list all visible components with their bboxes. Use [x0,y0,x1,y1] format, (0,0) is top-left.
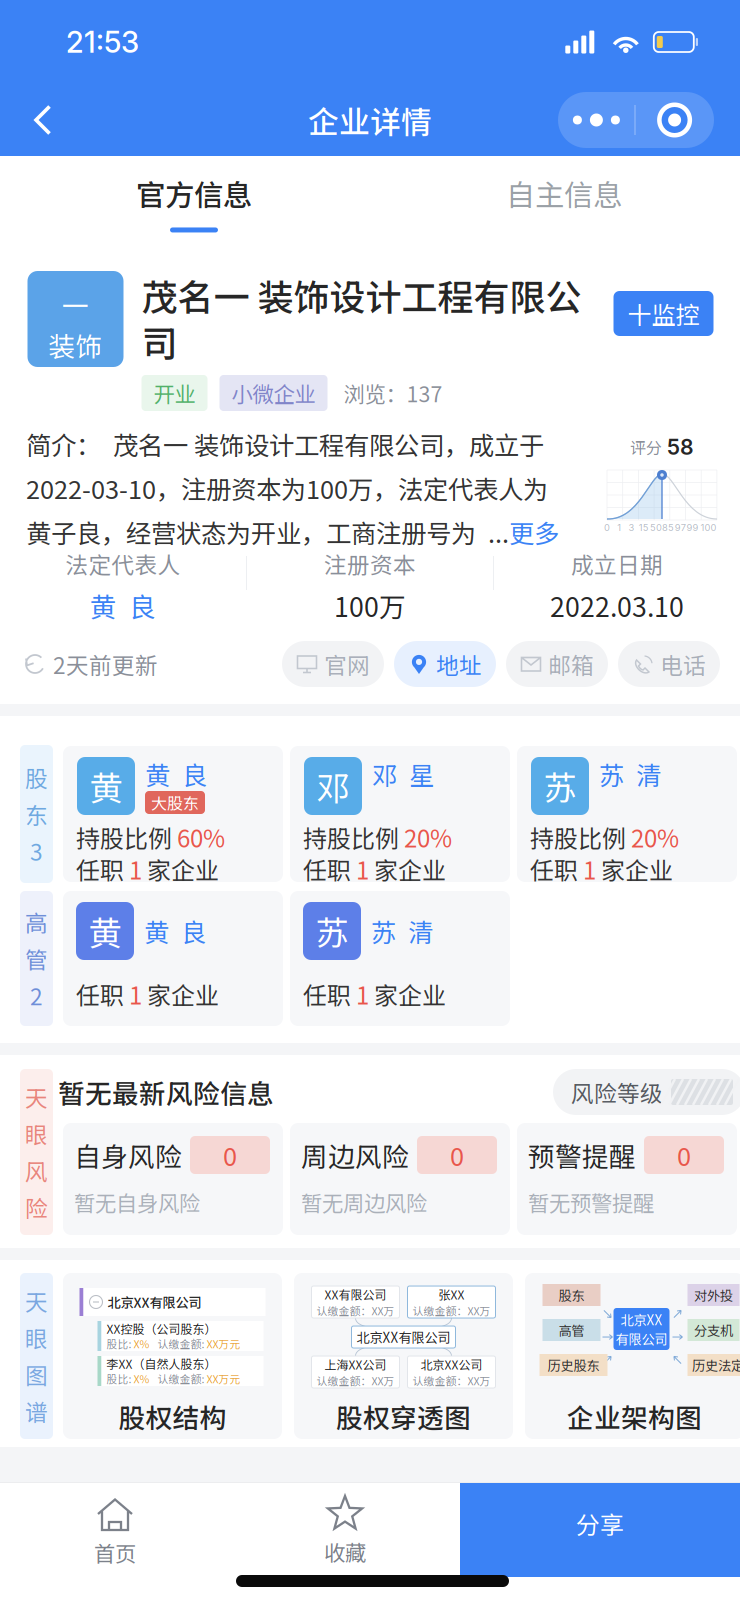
staticText: 股权穿透图 [336,1397,471,1436]
button[interactable]: Back [14,88,72,152]
staticText: 3 [30,834,43,867]
staticText: 北京XX有限公司 [107,1292,201,1312]
staticText: 开业 [153,378,195,408]
staticText: 分享 [576,1506,624,1541]
staticText: 任职 [303,852,356,886]
button[interactable]: Close mini program [636,92,714,148]
button[interactable]: 邮箱 [506,641,608,687]
button[interactable]: XX有限公司 [294,1273,513,1439]
staticText: 注册资本 [324,547,416,580]
staticText: 1 [617,522,621,533]
staticText: 股比: [106,1371,133,1386]
button[interactable]: 收藏 [230,1483,460,1577]
staticText: 家企业 [596,852,673,886]
staticText: 险 [25,1191,48,1224]
staticText: 有限公司 [615,1329,667,1348]
staticText: 15 [639,522,649,533]
staticText: XX控股（公司股东） [106,1320,216,1337]
staticText: 地址 [436,648,482,680]
staticText: 自主信息 [506,172,622,214]
staticText: 认缴金额: [157,1336,206,1351]
staticText: 股权结构 [118,1397,226,1436]
staticText: 浏览：137 [343,378,442,408]
staticText: 任职 [76,977,129,1011]
button[interactable]: 黄 [63,891,283,1026]
button[interactable]: 分享 [460,1483,740,1577]
button[interactable]: 苏 [290,891,510,1026]
staticText: 风险等级 [571,1076,663,1108]
staticText: 100 [701,522,717,533]
staticText: 50 [650,522,662,533]
staticText: 股比: [106,1336,133,1351]
button[interactable]: 自身风险 [63,1123,283,1235]
staticText: 认缴金额：XX万 [316,1373,394,1388]
button[interactable]: 邓 [290,746,510,882]
staticText: 分支机 [694,1320,733,1340]
staticText: 苏 清 [371,913,433,949]
staticText: 苏 清 [599,756,661,792]
staticText: 1 [129,977,142,1011]
staticText: 认缴金额：XX万 [316,1303,394,1318]
staticText: 苏 [315,907,348,955]
staticText: 1 [356,852,369,886]
staticText: 黄 [89,762,122,810]
staticText: 3 [628,522,634,533]
staticText: 北京XX公司 [420,1356,482,1373]
staticText: 眼 [25,1321,48,1354]
button[interactable]: 十监控 [613,291,713,336]
staticText: 0 [677,1137,691,1173]
staticText: 2022-03-10，注册资本为100万，法定代表人为 [26,470,548,506]
button[interactable]: 预警提醒 [517,1123,737,1235]
staticText: 成立日期 [571,547,663,580]
staticText: 一 [62,285,89,324]
staticText: 简介： 茂名一 装饰设计工程有限公司，成立于 [26,426,544,462]
staticText: 周边风险 [301,1136,409,1174]
button[interactable]: 北京XX有限公司 [63,1273,282,1439]
staticText: 图 [25,1358,48,1391]
staticText: 1 [129,852,142,886]
staticText: 股 [25,761,48,794]
staticText: 暂无最新风险信息 [58,1073,274,1111]
button[interactable]: More options [558,92,634,148]
staticText: 家企业 [369,977,446,1011]
button[interactable]: 地址 [394,641,496,687]
staticText: 0 [604,522,610,533]
staticText: 0 [450,1137,464,1173]
staticText: 暂无自身风险 [74,1187,200,1217]
staticText: 0 [223,1137,237,1173]
staticText: 邮箱 [548,648,594,680]
staticText: 2 [30,979,43,1012]
button[interactable]: 首页 [0,1483,230,1577]
staticText: 黄子良，经营状态为开业，工商注册号为 ... [26,514,509,550]
staticText: 管 [25,942,48,975]
staticText: 苏 [543,762,576,810]
staticText: 自身风险 [74,1136,182,1174]
staticText: 企业架构图 [567,1397,702,1436]
button[interactable]: 苏 [517,746,737,882]
staticText: 电话 [660,648,706,680]
staticText: 对外投 [694,1285,733,1305]
staticText: 任职 [303,977,356,1011]
staticText: 暂无周边风险 [301,1187,427,1217]
staticText: 持股比例 [530,820,631,854]
staticText: 认缴金额：XX万 [412,1373,490,1388]
staticText: 历史法定代 [692,1355,740,1375]
staticText: 任职 [530,852,583,886]
staticText: 邓 星 [372,756,434,792]
staticText: 谱 [25,1395,48,1428]
button[interactable]: 自主信息 [388,156,740,242]
button[interactable]: 电话 [618,641,720,687]
button[interactable]: 官方信息 [0,156,388,242]
staticText: 黄 [88,907,121,955]
staticText: 装饰 [48,326,102,364]
staticText: 邓 [316,762,349,810]
button[interactable]: 官网 [282,641,384,687]
staticText: 2022.03.10 [550,586,684,625]
button[interactable]: 股东 [525,1273,740,1439]
staticText: XX万元 [206,1336,240,1351]
button[interactable]: 黄 [63,746,283,882]
staticText: 历史股东 [547,1355,599,1375]
button[interactable]: 周边风险 [290,1123,510,1235]
staticText: 更多 [509,514,559,550]
staticText: 家企业 [142,852,219,886]
